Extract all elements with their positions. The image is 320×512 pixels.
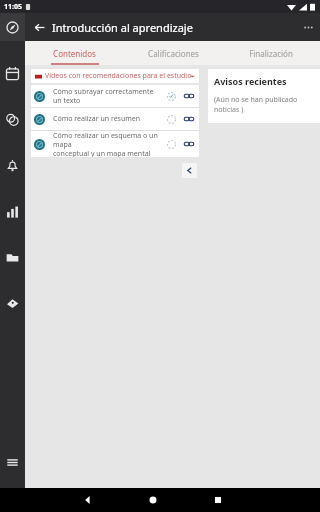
button[interactable]: Enlace <box>181 136 197 152</box>
button[interactable]: Vídeos con recomendaciones para el estud… <box>31 69 199 83</box>
button[interactable]: Recientes <box>206 488 230 512</box>
button[interactable]: Más opciones <box>298 17 318 37</box>
button[interactable]: Inicio <box>141 488 165 512</box>
button[interactable]: Atrás <box>28 16 50 38</box>
button[interactable]: Etiquetas <box>0 289 25 317</box>
button[interactable]: Notificaciones <box>0 151 25 179</box>
staticText: (Aún no se han publicado noticias ) <box>214 95 316 115</box>
button[interactable]: Archivos <box>0 243 25 271</box>
staticText: Finalización <box>249 48 293 59</box>
button[interactable]: Marcar como hecho <box>163 111 179 127</box>
button[interactable]: Cómo subrayar correctamente un texto <box>31 85 199 107</box>
staticText: Cómo realizar un resumen <box>53 114 163 124</box>
staticText: Calificaciones <box>148 48 199 59</box>
button[interactable]: Calendario <box>0 59 25 87</box>
staticText: Vídeos con recomendaciones para el estud… <box>45 71 192 81</box>
button[interactable]: Contenidos <box>25 41 124 65</box>
staticText: Cómo realizar un esquema o un mapa conce… <box>53 131 163 157</box>
button[interactable]: Informes <box>0 197 25 225</box>
button[interactable]: Cómo realizar un resumen <box>31 108 199 130</box>
staticText: Avisos recientes <box>214 75 287 87</box>
button[interactable]: Cómo realizar un esquema o un mapa conce… <box>31 131 199 157</box>
staticText: Contenidos <box>53 48 96 59</box>
button[interactable]: Inicio del sitio <box>0 13 25 41</box>
button[interactable]: Contraer <box>182 163 197 178</box>
button[interactable]: Enlace <box>181 111 197 127</box>
staticText: Introducción al aprendizaje <box>52 20 193 35</box>
staticText: 11:05 <box>4 2 22 12</box>
button[interactable]: Enlace <box>181 88 197 104</box>
staticText: Cómo subrayar correctamente un texto <box>53 87 163 105</box>
button[interactable]: Marcar como hecho <box>163 88 179 104</box>
button[interactable]: Marcar como hecho <box>163 136 179 152</box>
button[interactable]: Atrás <box>76 488 100 512</box>
button[interactable]: Calificaciones <box>124 41 222 65</box>
button[interactable]: Menú <box>0 448 25 476</box>
button[interactable]: Finalización <box>222 41 320 65</box>
button[interactable]: Mensajes <box>0 105 25 133</box>
